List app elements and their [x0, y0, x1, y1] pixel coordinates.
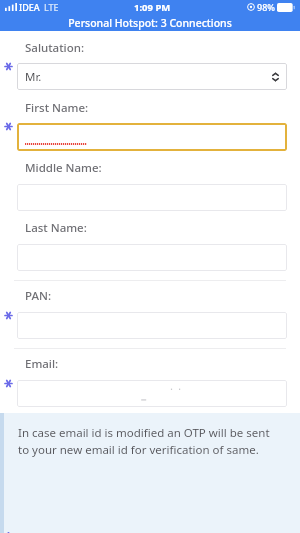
button[interactable] [17, 123, 287, 151]
staticText: Personal Hotspot: 3 Connections [68, 16, 232, 30]
staticText: Middle Name: [25, 160, 102, 176]
staticText: Mr. [25, 69, 42, 85]
staticText: PAN: [25, 288, 52, 304]
staticText: Salutation: [25, 40, 85, 56]
staticText: IDEA [19, 1, 40, 13]
staticText: Last Name: [25, 220, 87, 236]
button[interactable] [17, 244, 287, 271]
staticText: 1:09 PM [134, 1, 171, 14]
button[interactable] [17, 312, 287, 339]
staticText: 98% [257, 1, 275, 13]
staticText: In case email id is modified an OTP will… [18, 425, 282, 458]
button[interactable] [17, 380, 287, 407]
staticText: Email: [25, 356, 59, 372]
button[interactable] [17, 184, 287, 211]
staticText: First Name: [25, 100, 89, 116]
staticText: LTE [44, 1, 59, 13]
button[interactable]: Mr. [17, 63, 287, 90]
